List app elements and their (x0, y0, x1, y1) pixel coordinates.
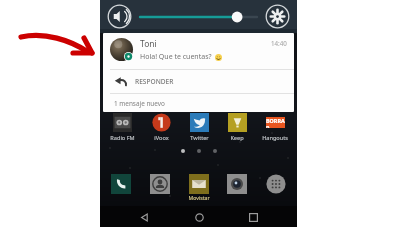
button[interactable]: Contacts (145, 174, 175, 201)
button[interactable]: RESPONDER (103, 70, 294, 93)
button[interactable]: Home (189, 207, 209, 227)
button[interactable]: iVoox (142, 113, 180, 142)
staticText: BORRAR (266, 117, 285, 128)
staticText: 1 mensaje nuevo (114, 99, 165, 108)
staticText: Hola! Que te cuentas? (140, 52, 212, 62)
button[interactable]: Recent apps (243, 207, 263, 227)
staticText: Movistar (188, 194, 210, 201)
staticText: Toni (140, 38, 157, 50)
staticText: Twitter (190, 134, 209, 142)
button[interactable]: Phone (106, 174, 136, 201)
button[interactable]: Keep (218, 113, 256, 142)
staticText: iVoox (154, 134, 169, 142)
button[interactable]: Radio FM (103, 113, 142, 142)
button[interactable]: Apps (261, 174, 291, 201)
button[interactable]: Volume (107, 4, 132, 29)
staticText: Radio FM (110, 134, 135, 142)
button[interactable]: Toni (103, 33, 294, 112)
button[interactable]: Sound settings (265, 4, 290, 29)
staticText: Hangouts (262, 134, 288, 142)
button[interactable]: Back (134, 207, 154, 227)
button[interactable]: Twitter (180, 113, 218, 142)
staticText: RESPONDER (135, 77, 174, 86)
staticText: 14:40 (271, 39, 287, 47)
button[interactable]: BORRAR (266, 117, 285, 128)
button[interactable]: BORRAR (256, 113, 294, 142)
staticText: Keep (230, 134, 244, 142)
button[interactable]: Movistar mail (184, 174, 214, 201)
button[interactable]: Camera (222, 174, 252, 201)
button[interactable] (140, 6, 257, 28)
